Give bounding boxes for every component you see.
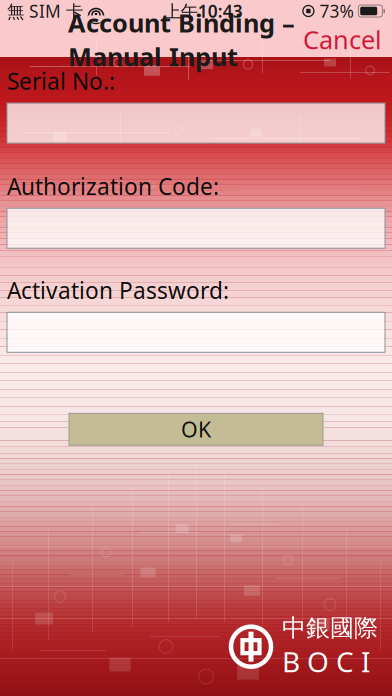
staticText: 中銀國際 bbox=[282, 613, 378, 643]
button[interactable]: Cancel bbox=[295, 17, 392, 62]
staticText: Authorization Code: bbox=[7, 171, 219, 201]
button[interactable]: OK bbox=[69, 413, 323, 445]
staticText bbox=[83, 0, 88, 22]
button[interactable] bbox=[7, 201, 385, 248]
staticText: 73% bbox=[314, 0, 353, 22]
staticText: Cancel bbox=[303, 23, 382, 56]
button[interactable] bbox=[7, 96, 385, 143]
staticText: OK bbox=[181, 415, 211, 443]
staticText: 上午10:43 bbox=[164, 0, 243, 22]
staticText: Account Binding – Manual Input bbox=[68, 6, 295, 73]
staticText: Serial No.: bbox=[7, 66, 115, 96]
staticText: B O C I bbox=[282, 643, 370, 680]
button[interactable] bbox=[7, 305, 385, 352]
staticText: Activation Password: bbox=[7, 275, 229, 305]
staticText: 無 SIM 卡 bbox=[7, 0, 83, 22]
staticText bbox=[353, 0, 358, 22]
